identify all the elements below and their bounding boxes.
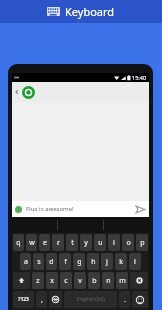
staticText: 15:40 — [132, 74, 147, 81]
staticText: l — [134, 257, 136, 267]
button[interactable]: z — [32, 272, 44, 289]
button[interactable]: m — [116, 272, 128, 289]
button[interactable]: h — [87, 253, 99, 270]
staticText: t — [71, 238, 74, 248]
staticText: ?123 — [18, 296, 29, 303]
staticText: i — [113, 238, 115, 248]
button[interactable]: Send — [135, 204, 146, 215]
button[interactable]: Emoji — [132, 291, 148, 308]
button[interactable]: o — [122, 234, 134, 251]
staticText: q — [16, 238, 21, 248]
staticText: m — [119, 276, 126, 286]
staticText: u — [98, 238, 103, 248]
staticText: x — [50, 276, 54, 286]
button[interactable]: i — [108, 234, 120, 251]
button[interactable]: u — [94, 234, 106, 251]
staticText: c — [64, 276, 68, 286]
staticText: Flux is awesome! — [26, 205, 74, 213]
button[interactable]: Keyboard — [0, 0, 162, 23]
button[interactable]: l — [129, 253, 141, 270]
staticText: o — [126, 238, 131, 248]
button[interactable]: e — [39, 234, 50, 251]
button[interactable]: w — [26, 234, 37, 251]
staticText: g — [77, 257, 82, 267]
staticText: a — [24, 257, 28, 267]
button[interactable]: x — [46, 272, 58, 289]
button[interactable]: y — [80, 234, 92, 251]
button[interactable]: q — [13, 234, 24, 251]
staticText: n — [106, 276, 111, 286]
staticText: r — [57, 238, 60, 248]
button[interactable]: a — [20, 253, 31, 270]
button[interactable]: . — [119, 291, 130, 308]
button[interactable]: t — [66, 234, 78, 251]
staticText: e — [43, 238, 47, 248]
button[interactable]: Change language — [49, 291, 62, 308]
button[interactable]: s — [33, 253, 44, 270]
button[interactable]: f — [59, 253, 71, 270]
button[interactable]: Shift — [13, 272, 30, 289]
button[interactable]: n — [102, 272, 114, 289]
staticText: b — [92, 276, 97, 286]
button[interactable]: d — [46, 253, 57, 270]
staticText: w — [29, 238, 35, 248]
staticText: f — [64, 257, 67, 267]
staticText: Keyboard — [65, 4, 115, 19]
button[interactable]: Flux avatar — [21, 85, 35, 99]
button[interactable]: b — [88, 272, 100, 289]
staticText: z — [36, 276, 40, 286]
button[interactable]: Flux is awesome! — [15, 201, 146, 217]
button[interactable]: , — [36, 291, 47, 308]
staticText: d — [49, 257, 54, 267]
button[interactable]: g — [73, 253, 85, 270]
button[interactable]: k — [115, 253, 127, 270]
staticText: h — [91, 257, 96, 267]
button[interactable]: j — [101, 253, 113, 270]
button[interactable]: c — [60, 272, 72, 289]
button[interactable]: Backspace — [130, 272, 148, 289]
button[interactable]: ?123 — [13, 291, 34, 308]
button[interactable]: English (US) — [64, 291, 117, 308]
staticText: j — [106, 257, 108, 267]
button[interactable]: Back — [13, 88, 21, 96]
staticText: , — [41, 295, 43, 305]
button[interactable]: v — [74, 272, 86, 289]
staticText: p — [140, 238, 145, 248]
staticText: s — [37, 257, 41, 267]
button[interactable]: r — [52, 234, 64, 251]
staticText: y — [84, 238, 88, 248]
staticText: . — [124, 295, 126, 305]
staticText: English (US) — [77, 296, 105, 303]
staticText: k — [119, 257, 123, 267]
staticText: v — [78, 276, 82, 286]
button[interactable]: p — [136, 234, 148, 251]
